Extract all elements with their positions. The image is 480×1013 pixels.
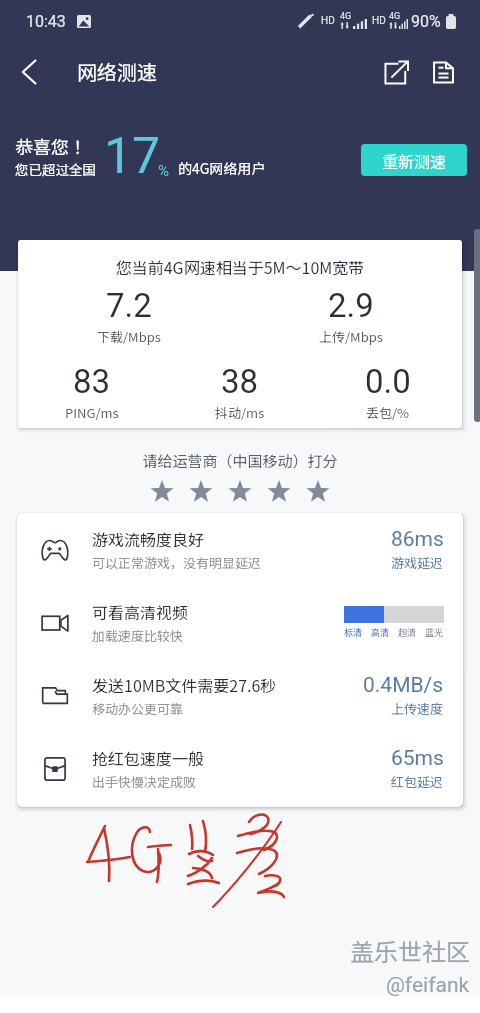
staticText: HD <box>321 15 335 27</box>
staticText: 86ms <box>391 527 444 552</box>
staticText: 网络测速 <box>77 57 157 86</box>
staticText: 蓝光 <box>425 626 444 639</box>
button[interactable]: Rate 1 stars <box>150 479 174 503</box>
button[interactable]: Report <box>425 54 461 90</box>
staticText: 加载速度比较快 <box>92 626 184 645</box>
staticText: 下载/Mbps <box>97 327 161 346</box>
staticText: 游戏流畅度良好 <box>92 527 205 550</box>
button[interactable]: Rate 4 stars <box>267 479 291 503</box>
button[interactable]: Rate 3 stars <box>228 479 252 503</box>
staticText: 38 <box>221 362 259 401</box>
staticText: 红包延迟 <box>391 772 444 791</box>
staticText: 标清 <box>344 626 363 639</box>
staticText: 超清 <box>398 626 417 639</box>
button[interactable]: 游戏流畅度良好 <box>17 513 463 586</box>
staticText: 17 <box>104 127 161 186</box>
staticText: 10:43 <box>26 12 66 31</box>
staticText: 4G <box>340 11 352 22</box>
staticText: 90% <box>411 12 441 31</box>
staticText: PING/ms <box>65 403 119 422</box>
staticText: 移动办公更可靠 <box>92 699 184 718</box>
button[interactable]: Rate 2 stars <box>189 479 213 503</box>
staticText: % <box>158 162 169 180</box>
button[interactable]: 可看高清视频 <box>17 586 463 659</box>
staticText: 可看高清视频 <box>92 600 189 623</box>
staticText: 您已超过全国 <box>15 159 96 179</box>
staticText: HD <box>372 15 386 27</box>
staticText: 游戏延迟 <box>391 553 444 572</box>
button[interactable]: 发送10MB文件需要27.6秒 <box>17 659 463 732</box>
staticText: 高清 <box>371 626 390 639</box>
staticText: 盖乐世社区 <box>350 933 470 968</box>
staticText: 0.4MB/s <box>363 673 444 698</box>
staticText: 4G <box>389 11 401 22</box>
staticText: 出手快慢决定成败 <box>92 772 197 791</box>
button[interactable]: 抢红包速度一般 <box>17 732 463 805</box>
staticText: 的4G网络用户 <box>178 158 266 178</box>
staticText: 您当前4G网速相当于5M～10M宽带 <box>18 255 462 278</box>
button[interactable]: 重新测速 <box>361 144 467 176</box>
button[interactable]: Share <box>378 54 414 90</box>
staticText: 请给运营商（中国移动）打分 <box>0 450 480 472</box>
staticText: 发送10MB文件需要27.6秒 <box>92 673 277 696</box>
staticText: 0.0 <box>365 362 411 401</box>
staticText: 上传速度 <box>391 699 444 718</box>
staticText: 65ms <box>391 746 444 771</box>
staticText: 恭喜您 ！ <box>15 133 92 159</box>
staticText: 丢包/% <box>366 403 410 422</box>
button[interactable]: Back <box>6 49 52 95</box>
staticText: 83 <box>73 362 111 401</box>
staticText: 上传/Mbps <box>319 327 383 346</box>
staticText: @feifank <box>386 973 470 998</box>
staticText: 抖动/ms <box>215 403 265 422</box>
staticText: 抢红包速度一般 <box>92 746 205 769</box>
staticText: 重新测速 <box>382 149 447 172</box>
button[interactable]: Rate 5 stars <box>306 479 330 503</box>
staticText: 可以正常游戏，没有明显延迟 <box>92 553 262 572</box>
staticText: 7.2 <box>106 286 152 325</box>
staticText: 2.9 <box>328 286 374 325</box>
